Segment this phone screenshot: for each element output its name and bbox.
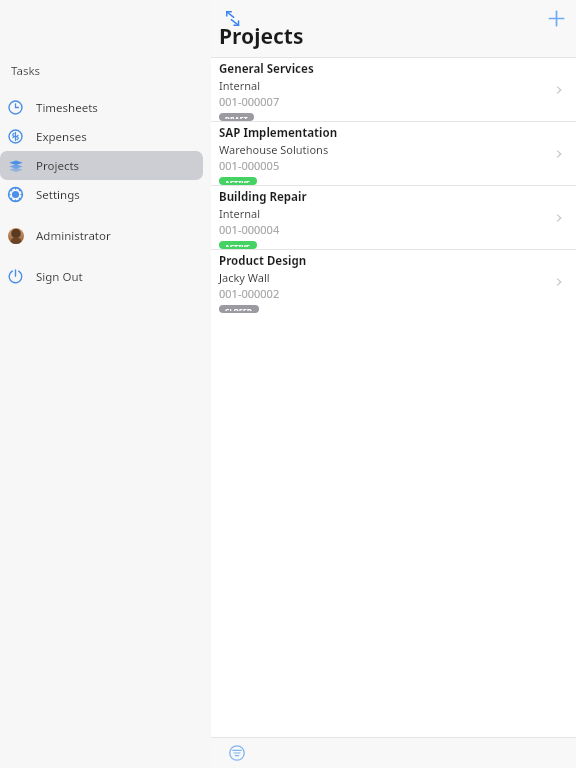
staticText: Projects	[36, 158, 80, 174]
staticText: Tasks	[11, 63, 41, 79]
staticText: DRAFT	[225, 115, 248, 119]
staticText: Sign Out	[36, 269, 83, 285]
button[interactable]: Settings	[0, 180, 203, 209]
staticText: 001-000005	[219, 158, 280, 173]
button[interactable]: Collapse sidebar	[215, 1, 249, 35]
staticText: Timesheets	[36, 100, 98, 116]
button[interactable]: General Services	[211, 58, 576, 121]
button[interactable]: Filter	[224, 740, 250, 766]
staticText: SAP Implementation	[219, 125, 338, 141]
button[interactable]: Sign Out	[0, 262, 203, 291]
staticText: Product Design	[219, 253, 307, 269]
staticText: Administrator	[36, 228, 111, 244]
button[interactable]: Add project	[539, 1, 573, 35]
staticText: Jacky Wall	[219, 270, 270, 285]
staticText: General Services	[219, 61, 314, 77]
staticText: Projects	[219, 22, 304, 51]
staticText: 001-000007	[219, 94, 280, 109]
staticText: Building Repair	[219, 189, 307, 205]
staticText: 001-000002	[219, 286, 280, 301]
button[interactable]: Timesheets	[0, 93, 203, 122]
button[interactable]: Building Repair	[211, 186, 576, 249]
button[interactable]: Product Design	[211, 250, 576, 313]
staticText: 001-000004	[219, 222, 280, 237]
staticText: Internal	[219, 206, 261, 221]
button[interactable]: Administrator	[0, 221, 203, 250]
staticText: Warehouse Solutions	[219, 142, 329, 157]
staticText: Expenses	[36, 129, 87, 145]
button[interactable]: Projects	[0, 151, 203, 180]
button[interactable]: Expenses	[0, 122, 203, 151]
staticText: Settings	[36, 187, 80, 203]
staticText: ACTIVE	[225, 243, 251, 247]
staticText: CLOSED	[225, 307, 253, 311]
button[interactable]: SAP Implementation	[211, 122, 576, 185]
staticText: Internal	[219, 78, 261, 93]
staticText: ACTIVE	[225, 179, 251, 183]
